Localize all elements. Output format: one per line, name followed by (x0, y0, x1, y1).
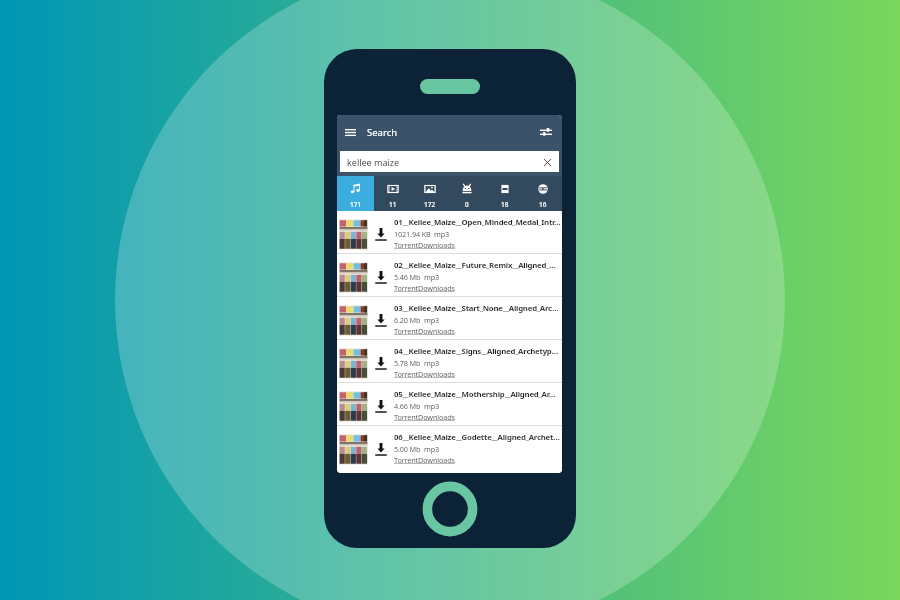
staticText: 11 (389, 200, 397, 209)
button[interactable]: Category tab 18 (486, 176, 524, 211)
staticText: mp3 (424, 401, 440, 411)
staticText: 1021.94 KB (394, 229, 431, 239)
staticText: TorrentDownloads (394, 326, 455, 336)
staticText: 172 (424, 200, 436, 209)
button[interactable]: Category tab 16 (524, 176, 562, 211)
button[interactable]: Download (337, 254, 562, 296)
button[interactable]: Download (337, 383, 562, 425)
staticText: mp3 (424, 315, 440, 325)
button[interactable]: Category tab 171 (337, 176, 374, 211)
staticText: mp3 (424, 358, 440, 368)
button[interactable]: Menu (340, 122, 360, 142)
staticText: TorrentDownloads (394, 283, 455, 293)
staticText: 16 (539, 200, 547, 209)
staticText: TorrentDownloads (394, 369, 455, 379)
staticText: 5.00 Mb (394, 444, 421, 454)
staticText: TorrentDownloads (394, 455, 455, 465)
staticText: 02__Kellee_Maize__Future_Remix__Aligned_… (394, 260, 556, 271)
staticText: 4.66 Mb (394, 401, 421, 411)
staticText: mp3 (424, 444, 440, 454)
staticText: 5.46 Mb (394, 272, 421, 282)
staticText: mp3 (424, 272, 440, 282)
other: Download (368, 426, 394, 468)
other: Download (368, 297, 394, 339)
staticText: TorrentDownloads (394, 240, 455, 250)
staticText: 05__Kellee_Maize__Mothership__Aligned_Ar… (394, 389, 556, 400)
staticText: 06__Kellee_Maize__Godette__Aligned_Arche… (394, 432, 560, 443)
staticText: TorrentDownloads (394, 412, 455, 422)
staticText: mp3 (434, 229, 450, 239)
button[interactable]: Clear search (538, 153, 556, 171)
staticText: 04__Kellee_Maize__Signs__Aligned_Archety… (394, 346, 559, 357)
other: Download (368, 211, 394, 253)
staticText: 18 (501, 200, 509, 209)
button[interactable]: Category tab 11 (374, 176, 411, 211)
other: Download (368, 340, 394, 382)
button[interactable]: Download (337, 426, 562, 468)
staticText: 6.20 Mb (394, 315, 421, 325)
staticText: kellee maize (347, 156, 400, 168)
button[interactable]: kellee maize (340, 151, 559, 172)
button[interactable]: Download (337, 297, 562, 339)
other: Download (368, 254, 394, 296)
button[interactable]: Download (337, 340, 562, 382)
button[interactable]: Filter settings (536, 122, 556, 142)
staticText: 5.78 Mb (394, 358, 421, 368)
other: Download (368, 383, 394, 425)
button[interactable]: Category tab 0 (448, 176, 486, 211)
staticText: 0 (465, 200, 469, 209)
button[interactable]: Download (337, 211, 562, 253)
button[interactable]: Category tab 172 (411, 176, 448, 211)
staticText: 01__Kellee_Maize__Open_Minded_Medal_Intr… (394, 217, 561, 228)
staticText: 03__Kellee_Maize__Start_None__Aligned_Ar… (394, 303, 559, 314)
staticText: Search (367, 126, 398, 139)
staticText: 171 (350, 200, 362, 209)
